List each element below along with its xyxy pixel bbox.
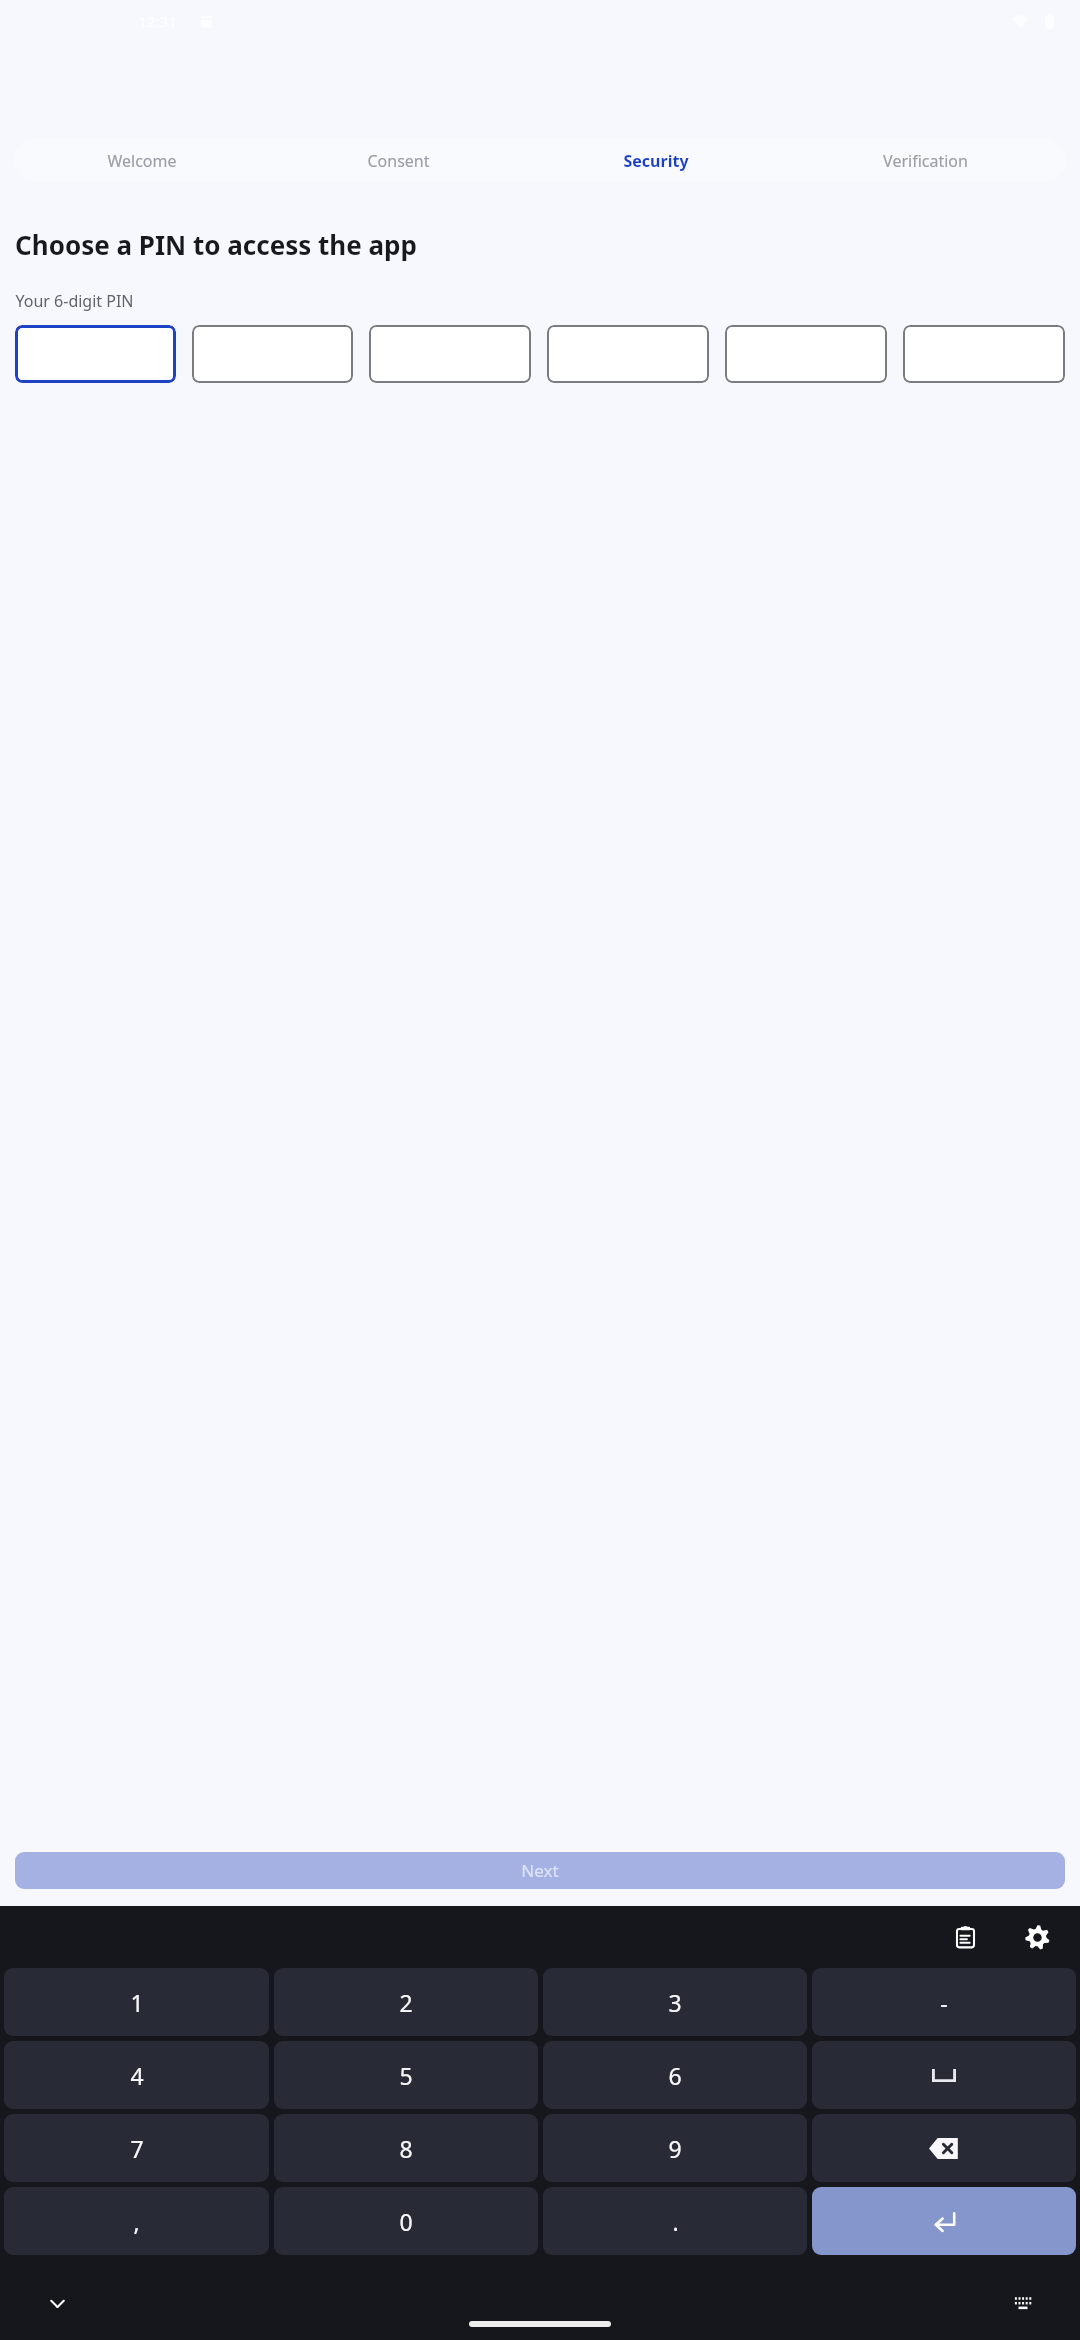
button[interactable]: Security — [527, 138, 784, 183]
button[interactable]: - — [812, 1968, 1076, 2036]
staticText: Consent — [367, 150, 430, 172]
button[interactable]: , — [4, 2187, 269, 2255]
staticText: 1 — [130, 1987, 144, 2018]
staticText: Next — [521, 1859, 559, 1882]
staticText: 2 — [399, 1987, 413, 2018]
button[interactable]: Verification — [784, 138, 1066, 183]
button[interactable] — [547, 325, 709, 383]
button[interactable]: Settings — [1014, 1914, 1060, 1960]
staticText: 5 — [399, 2060, 413, 2091]
staticText: Security — [623, 150, 689, 172]
button[interactable]: 7 — [4, 2114, 269, 2182]
staticText: 7 — [130, 2133, 144, 2164]
button[interactable]: 1 — [4, 1968, 269, 2036]
button[interactable] — [725, 325, 887, 383]
button[interactable]: . — [543, 2187, 807, 2255]
button[interactable] — [192, 325, 353, 383]
button[interactable] — [369, 325, 531, 383]
staticText: 3 — [668, 1987, 682, 2018]
staticText: Welcome — [107, 150, 177, 172]
staticText: Verification — [883, 150, 968, 172]
staticText: Choose a PIN to access the app — [15, 227, 417, 262]
button[interactable]: 0 — [274, 2187, 538, 2255]
button[interactable]: Welcome — [14, 138, 270, 183]
button[interactable]: Space — [812, 2041, 1076, 2109]
button[interactable] — [903, 325, 1065, 383]
staticText: 9 — [668, 2133, 682, 2164]
button[interactable]: Backspace — [812, 2114, 1076, 2182]
button[interactable]: 8 — [274, 2114, 538, 2182]
staticText: 0 — [399, 2206, 413, 2237]
staticText: 6 — [668, 2060, 682, 2091]
button[interactable]: Hide keyboard — [34, 2280, 80, 2326]
button[interactable]: Enter — [812, 2187, 1076, 2255]
button[interactable]: Next — [15, 1852, 1065, 1889]
button[interactable]: 9 — [543, 2114, 807, 2182]
staticText: Your 6-digit PIN — [15, 290, 134, 312]
button[interactable]: 4 — [4, 2041, 269, 2109]
button[interactable]: 2 — [274, 1968, 538, 2036]
button[interactable]: Clipboard — [942, 1914, 988, 1960]
button[interactable]: 3 — [543, 1968, 807, 2036]
staticText: - — [940, 1987, 948, 2018]
button[interactable]: Switch keyboard — [1000, 2280, 1046, 2326]
staticText: 4 — [130, 2060, 144, 2091]
button[interactable] — [15, 325, 176, 383]
button[interactable]: Consent — [270, 138, 527, 183]
staticText: . — [672, 2206, 679, 2237]
button[interactable]: 6 — [543, 2041, 807, 2109]
staticText: 8 — [399, 2133, 413, 2164]
button[interactable]: 5 — [274, 2041, 538, 2109]
staticText: , — [133, 2206, 140, 2237]
